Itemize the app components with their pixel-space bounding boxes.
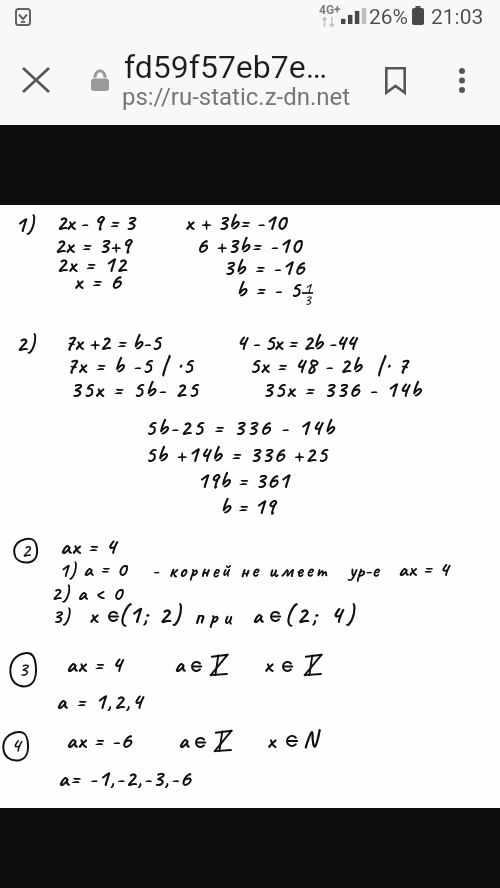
staticText: 3b = -16	[223, 253, 306, 282]
staticText: 2) a < 0	[51, 580, 124, 606]
staticText: 2x = 3+9	[54, 231, 132, 260]
staticText: 1	[304, 279, 311, 298]
staticText: 21:03	[431, 5, 484, 30]
staticText: a	[174, 650, 186, 679]
staticText: (2; 4)	[284, 599, 359, 631]
staticText: ax = 4	[66, 650, 124, 679]
staticText: 26%	[369, 5, 408, 30]
staticText: 1)	[15, 210, 35, 239]
staticText: 6 +3b= -10	[196, 231, 303, 260]
staticText: ax = 4	[398, 556, 450, 582]
staticText: 5x = 48 - 2b |· 7	[249, 351, 409, 380]
staticText: 7x = b -5 | ·5	[66, 351, 195, 380]
staticText: 3)	[52, 603, 71, 629]
staticText: a= -1,-2,-3,-6	[58, 764, 193, 793]
staticText: a	[252, 601, 264, 630]
staticText: 5b-25 = 336 - 14b	[145, 413, 337, 442]
staticText: a = 0	[83, 556, 128, 582]
staticText: x + 3b= -10	[185, 208, 287, 237]
staticText: a= -1,-2,-3,-6	[58, 764, 193, 793]
staticText: N	[303, 724, 319, 753]
staticText: https://ru-static.z-dn.net	[122, 83, 351, 111]
staticText: 5b +14b = 336 +25	[145, 440, 329, 469]
staticText: a = 0	[83, 556, 128, 582]
staticText: 2	[21, 537, 31, 562]
staticText: 5b +14b = 336 +25	[145, 440, 329, 469]
staticText: a	[252, 601, 264, 630]
staticText: x = 6	[74, 267, 123, 296]
staticText: b = - 5	[236, 275, 302, 304]
staticText: x	[267, 726, 277, 755]
staticText: b = - 5	[236, 275, 302, 304]
staticText: ax = -6	[66, 726, 133, 755]
staticText: b = 19	[220, 492, 276, 521]
staticText: x + 3b= -10	[185, 208, 287, 237]
staticText: 4G+	[319, 3, 341, 17]
staticText: - корней не имеет	[152, 558, 330, 583]
staticText: a = 1,2,4	[56, 687, 145, 716]
staticText: a = 1,2,4	[56, 687, 145, 716]
staticText: ур-е	[349, 558, 379, 583]
staticText: 19b = 361	[197, 466, 290, 495]
button[interactable]: Close	[9, 53, 63, 107]
staticText: fd59f57eb7e…	[124, 48, 328, 86]
staticText: 3	[18, 656, 28, 682]
staticText: ax = 4	[66, 650, 124, 679]
staticText: 2x = 3+9	[54, 231, 132, 260]
staticText: 3)	[52, 603, 71, 629]
staticText: 35x = 5b- 25	[70, 375, 200, 404]
staticText: ax = 4	[60, 532, 118, 561]
staticText: 4	[11, 732, 21, 758]
staticText: 1)	[59, 558, 77, 583]
staticText: ур-е	[349, 558, 379, 583]
staticText: 1)	[15, 210, 35, 239]
staticText: 5b-25 = 336 - 14b	[145, 413, 337, 442]
button[interactable]: Bookmark	[368, 53, 422, 107]
staticText: 35x = 5b- 25	[70, 375, 200, 404]
staticText: (1; 2)	[118, 599, 184, 631]
staticText: - корней не имеет	[152, 558, 330, 583]
staticText: 35x = 336 - 14b	[262, 375, 423, 404]
staticText: N	[303, 724, 319, 753]
staticText: x	[264, 650, 274, 679]
staticText: 7x +2 = b-5	[64, 328, 161, 357]
staticText: 2)	[16, 329, 36, 358]
button[interactable]: Downloads	[15, 8, 31, 26]
button[interactable]: More options	[435, 53, 489, 107]
staticText: x	[89, 601, 99, 630]
staticText: ax = -6	[66, 726, 133, 755]
staticText: 3b = -16	[223, 253, 306, 282]
staticText: при	[194, 603, 236, 631]
staticText: 3	[304, 291, 311, 310]
staticText: a	[178, 726, 190, 755]
staticText: b = 19	[220, 492, 276, 521]
staticText: 5x = 48 - 2b |· 7	[249, 351, 409, 380]
staticText: 7x = b -5 | ·5	[66, 351, 195, 380]
staticText: 2x = 12	[56, 250, 128, 279]
staticText: 1)	[59, 558, 77, 583]
staticText: (2; 4)	[284, 599, 359, 631]
staticText: 4 - 5x = 2b -44	[236, 328, 356, 357]
staticText: при	[194, 603, 236, 631]
staticText: x = 6	[74, 267, 123, 296]
staticText: x	[89, 601, 99, 630]
staticText: a	[174, 650, 186, 679]
staticText: 2x = 12	[56, 250, 128, 279]
staticText: ax = 4	[398, 556, 450, 582]
staticText: 19b = 361	[197, 466, 290, 495]
staticText: x	[264, 650, 274, 679]
staticText: 6 +3b= -10	[196, 231, 303, 260]
staticText: x	[267, 726, 277, 755]
staticText: 7x +2 = b-5	[64, 328, 161, 357]
staticText: 4 - 5x = 2b -44	[236, 328, 356, 357]
staticText: 2)	[16, 329, 36, 358]
staticText: 2x - 9 = 3	[56, 208, 135, 237]
staticText: a	[178, 726, 190, 755]
staticText: ax = 4	[60, 532, 118, 561]
staticText: 35x = 336 - 14b	[262, 375, 423, 404]
staticText: 2) a < 0	[51, 580, 124, 606]
staticText: (1; 2)	[118, 599, 184, 631]
staticText: 2x - 9 = 3	[56, 208, 135, 237]
